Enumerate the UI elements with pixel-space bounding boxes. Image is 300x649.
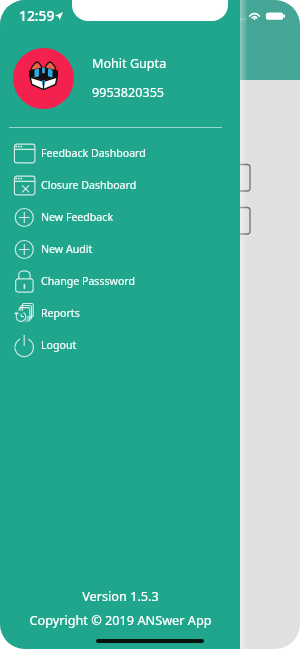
- button[interactable]: New Audit: [0, 233, 240, 265]
- button[interactable]: Logout: [0, 329, 240, 361]
- staticText: Logout: [41, 338, 77, 352]
- staticText: Change Passsword: [41, 274, 135, 288]
- button[interactable]: Reports: [0, 297, 240, 329]
- staticText: Version 1.5.3: [82, 587, 159, 604]
- button[interactable]: Profile picture: [13, 48, 74, 109]
- staticText: 9953820355: [92, 84, 165, 101]
- staticText: Closure Dashboard: [41, 178, 137, 192]
- staticText: 12:59: [19, 6, 55, 25]
- button[interactable]: Feedback Dashboard: [0, 137, 240, 169]
- staticText: New Audit: [41, 242, 93, 256]
- staticText: Reports: [41, 306, 80, 320]
- button[interactable]: Closure Dashboard: [0, 169, 240, 201]
- button[interactable]: Change Passsword: [0, 265, 240, 297]
- staticText: Copyright © 2019 ANSwer App: [29, 611, 212, 628]
- staticText: Mohit Gupta: [92, 55, 167, 72]
- staticText: New Feedback: [41, 210, 114, 224]
- staticText: Feedback Dashboard: [41, 146, 146, 160]
- button[interactable]: New Feedback: [0, 201, 240, 233]
